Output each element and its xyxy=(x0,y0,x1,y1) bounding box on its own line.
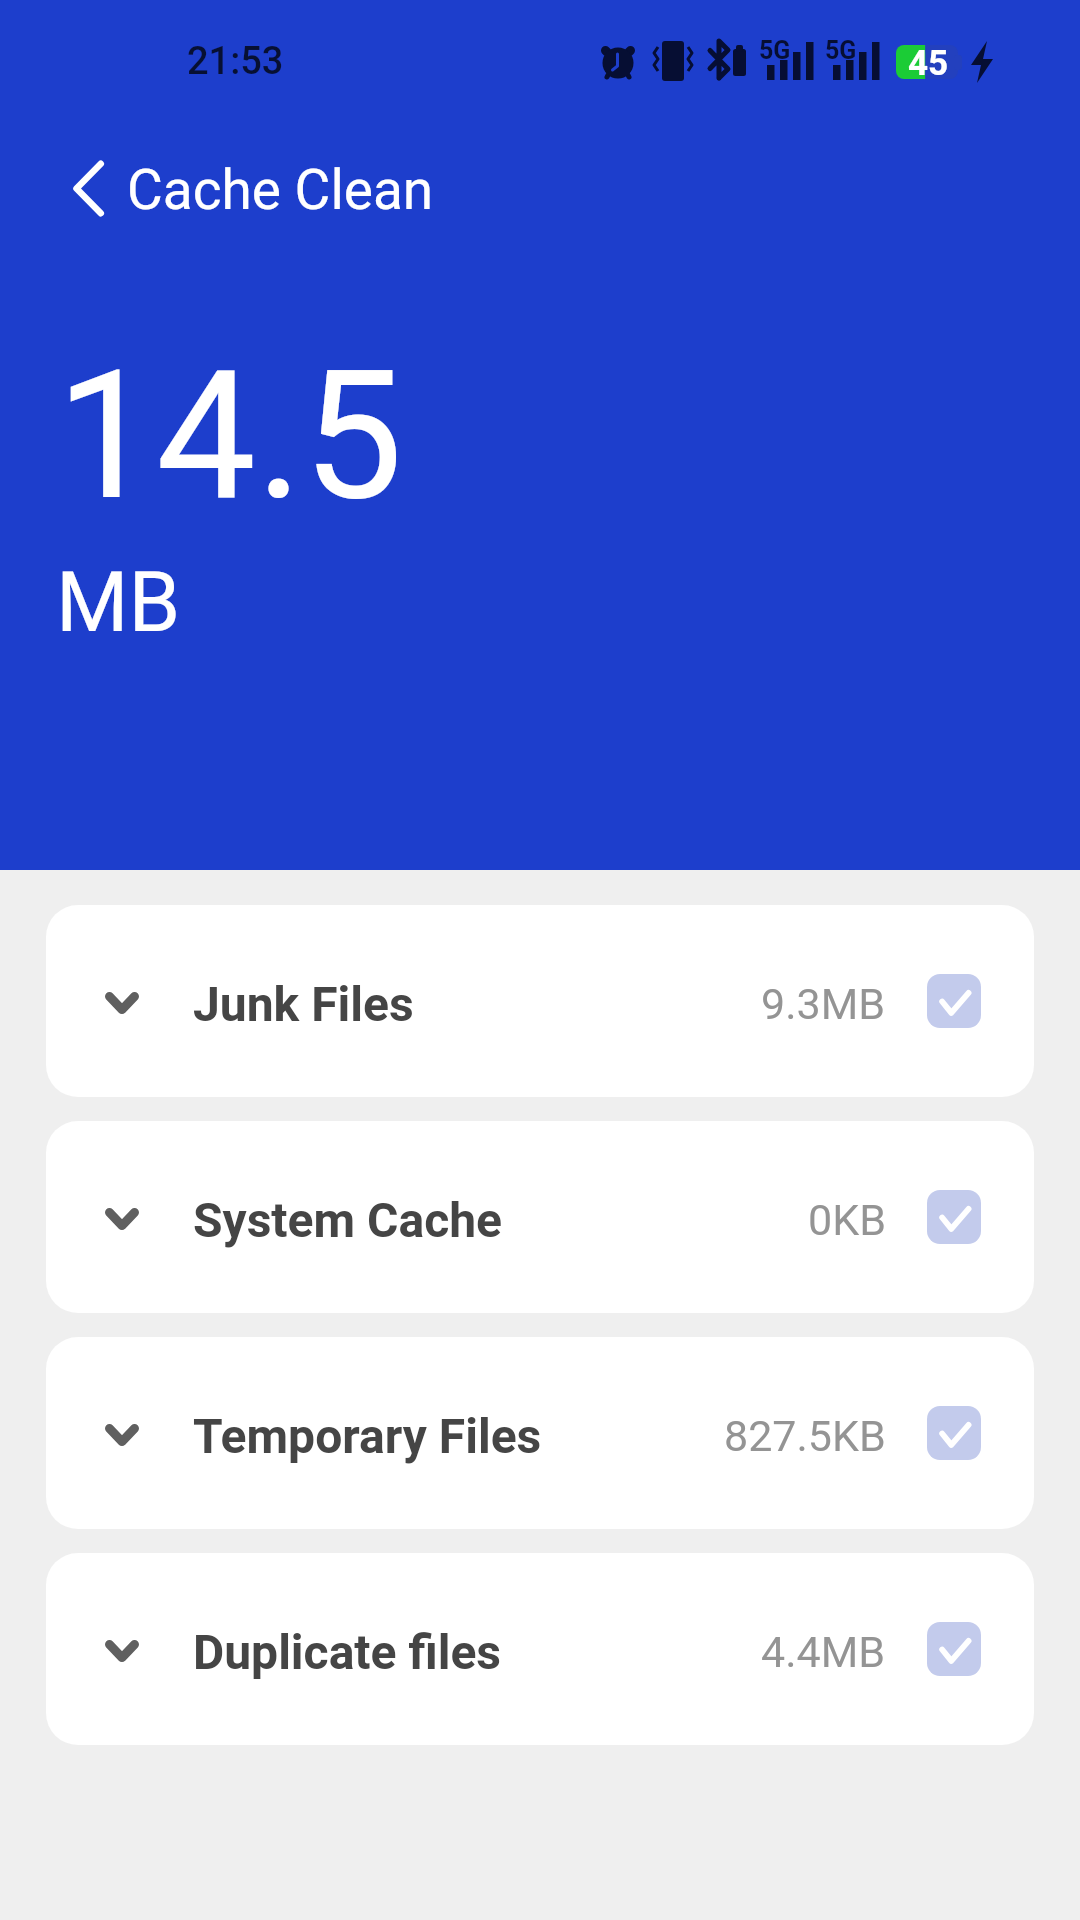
button[interactable]: Duplicate files xyxy=(46,1553,1034,1745)
staticText: 5G xyxy=(759,36,791,65)
button[interactable]: Temporary Files xyxy=(46,1337,1034,1529)
button[interactable]: Select Temporary Files xyxy=(927,1406,981,1460)
staticText: 21:53 xyxy=(187,39,284,84)
staticText: 4.4MB xyxy=(761,1627,886,1677)
staticText: Junk Files xyxy=(193,976,414,1032)
staticText: 5G xyxy=(825,36,857,65)
staticText: Duplicate files xyxy=(193,1624,502,1680)
button[interactable]: Back xyxy=(46,146,130,230)
staticText: 45 xyxy=(908,43,949,84)
staticText: 0KB xyxy=(808,1195,886,1245)
staticText: 827.5KB xyxy=(724,1411,886,1461)
button[interactable]: Select Junk Files xyxy=(927,974,981,1028)
staticText: 9.3MB xyxy=(761,979,886,1029)
button[interactable]: System Cache xyxy=(46,1121,1034,1313)
button[interactable]: Select System Cache xyxy=(927,1190,981,1244)
staticText: System Cache xyxy=(193,1192,503,1248)
staticText: Cache Clean xyxy=(127,158,434,222)
staticText: 14.5 xyxy=(56,332,404,541)
staticText: MB xyxy=(56,554,181,651)
button[interactable]: Junk Files xyxy=(46,905,1034,1097)
staticText: Temporary Files xyxy=(193,1408,542,1464)
button[interactable]: Select Duplicate files xyxy=(927,1622,981,1676)
